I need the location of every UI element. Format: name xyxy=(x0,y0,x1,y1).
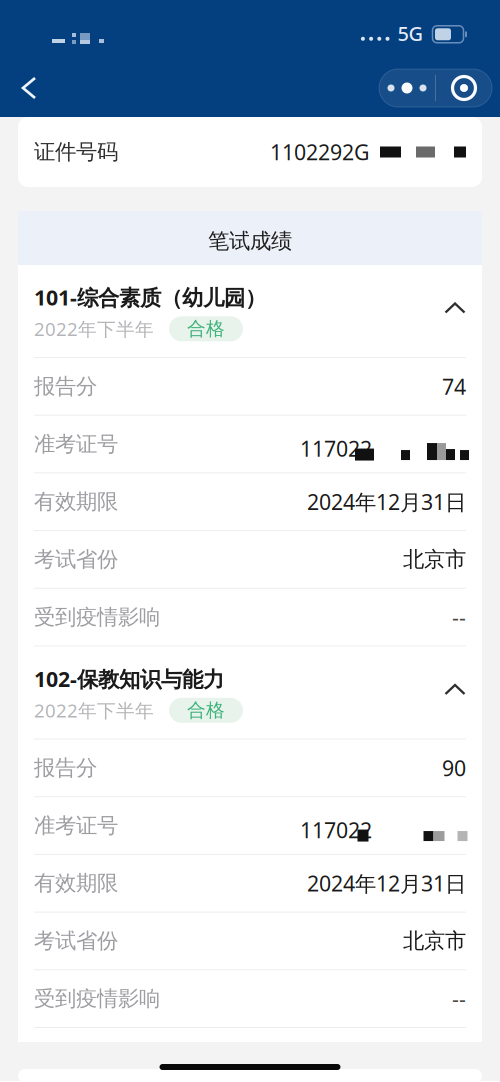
button[interactable]: 101-综合素质（幼儿园） xyxy=(18,265,482,357)
staticText: 北京市 xyxy=(403,546,466,572)
button[interactable]: Back xyxy=(6,65,52,111)
staticText: 102-保教知识与能力 xyxy=(34,664,224,693)
button[interactable]: 102-保教知识与能力 xyxy=(18,646,482,738)
staticText: 考试省份 xyxy=(34,928,118,954)
staticText: -- xyxy=(452,603,466,631)
staticText: 5G xyxy=(397,20,423,47)
staticText: 北京市 xyxy=(403,928,466,954)
staticText: 2024年12月31日 xyxy=(307,869,466,897)
staticText: 117022 xyxy=(300,434,372,463)
staticText: 合格 xyxy=(187,317,225,340)
staticText: 有效期限 xyxy=(34,870,118,896)
staticText: 准考证号 xyxy=(34,812,118,839)
staticText: 受到疫情影响 xyxy=(34,604,160,630)
staticText: 合格 xyxy=(187,699,225,722)
button[interactable]: More xyxy=(379,69,435,107)
staticText: 准考证号 xyxy=(34,431,118,457)
staticText: 受到疫情影响 xyxy=(34,985,160,1012)
staticText: 90 xyxy=(442,754,466,782)
staticText: 1102292G xyxy=(270,138,370,166)
staticText: 有效期限 xyxy=(34,489,118,515)
staticText: 考试省份 xyxy=(34,546,118,572)
staticText: 2024年12月31日 xyxy=(307,488,466,516)
staticText: 117022 xyxy=(300,816,372,844)
staticText: 笔试成绩 xyxy=(208,228,292,254)
staticText: -- xyxy=(452,984,466,1013)
staticText: 证件号码 xyxy=(34,139,118,165)
staticText: 74 xyxy=(442,372,466,400)
staticText: 101-综合素质（幼儿园） xyxy=(34,283,266,311)
staticText: 报告分 xyxy=(34,373,97,399)
staticText: 2022年下半年 xyxy=(34,698,154,723)
staticText: 2022年下半年 xyxy=(34,316,154,341)
staticText: 报告分 xyxy=(34,755,97,781)
button[interactable]: Close xyxy=(436,69,492,107)
